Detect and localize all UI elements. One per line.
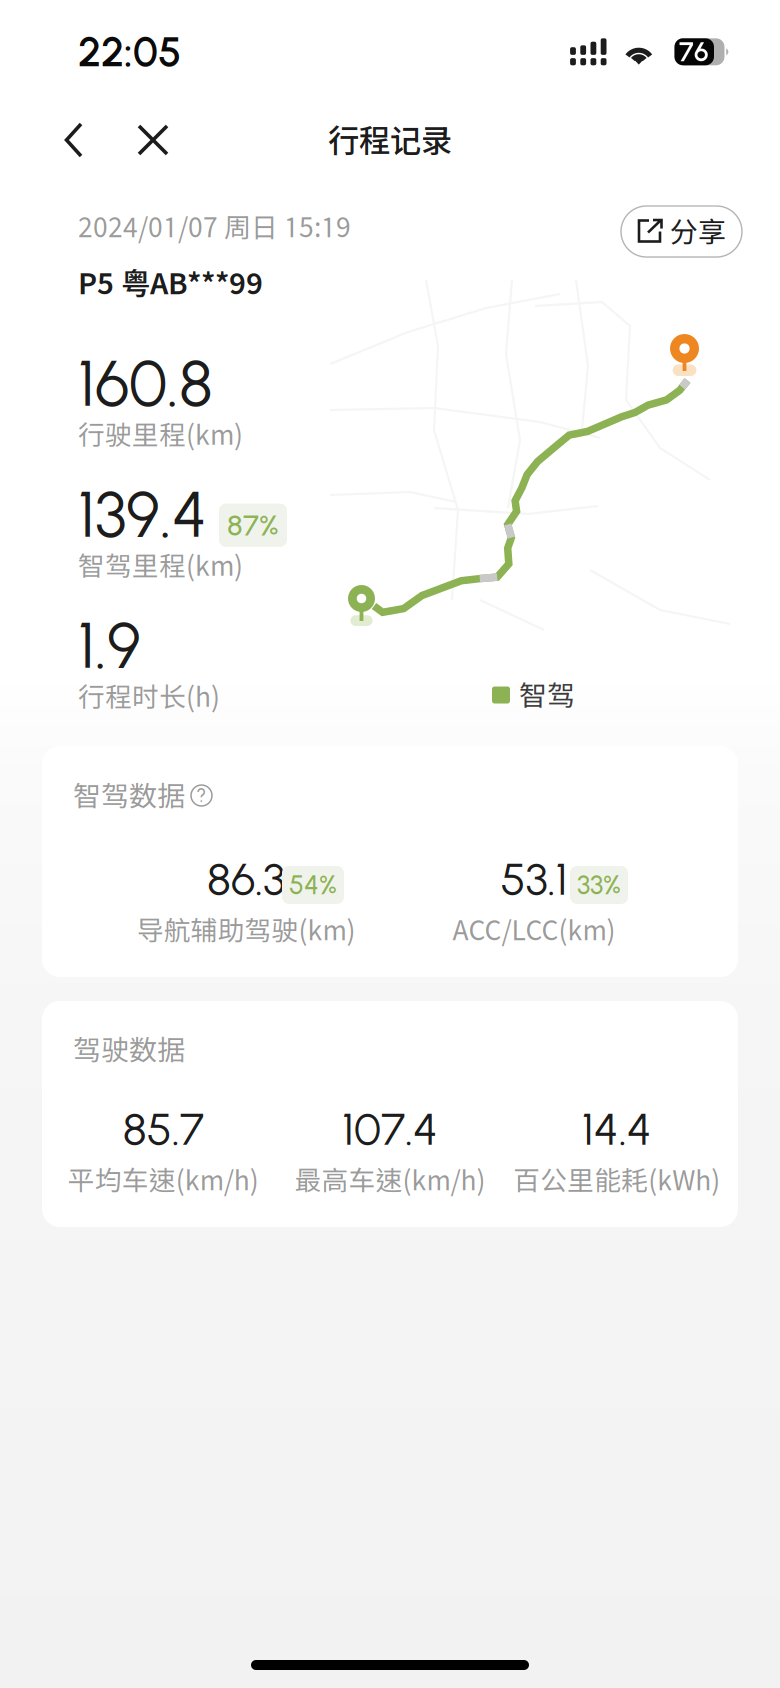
- staticText: 最高车速(km/h): [294, 1164, 485, 1196]
- staticText: 86.3: [207, 852, 285, 906]
- button[interactable]: 分享: [621, 206, 742, 257]
- staticText: P5 粤AB***99: [78, 266, 263, 300]
- staticText: 53.1: [500, 852, 567, 906]
- staticText: 智驾数据: [73, 779, 185, 812]
- staticText: 智驾: [519, 678, 575, 711]
- staticText: 2024/01/07 周日 15:19: [78, 211, 351, 243]
- staticText: 54%: [289, 869, 337, 901]
- staticText: 33%: [577, 869, 621, 901]
- staticText: 行程时长(h): [78, 681, 220, 712]
- staticText: 107.4: [342, 1102, 438, 1156]
- staticText: 导航辅助驾驶(km): [136, 914, 355, 946]
- staticText: 百公里能耗(kWh): [513, 1164, 720, 1196]
- staticText: ?: [196, 784, 206, 807]
- staticText: 平均车速(km/h): [68, 1164, 259, 1196]
- staticText: 22:05: [78, 27, 181, 77]
- staticText: 分享: [670, 215, 726, 248]
- staticText: 驾驶数据: [73, 1033, 185, 1066]
- staticText: 85.7: [123, 1102, 204, 1156]
- staticText: 行驶里程(km): [78, 419, 243, 450]
- staticText: 1.9: [78, 607, 141, 684]
- staticText: 87%: [227, 508, 279, 543]
- staticText: 14.4: [582, 1102, 652, 1156]
- staticText: 行程记录: [328, 121, 452, 158]
- button[interactable]: Back: [44, 107, 104, 173]
- button[interactable]: Close: [120, 107, 186, 173]
- staticText: 智驾里程(km): [78, 550, 243, 581]
- staticText: 139.4: [78, 476, 207, 553]
- staticText: 160.8: [78, 345, 213, 422]
- staticText: ACC/LCC(km): [452, 914, 615, 946]
- staticText: 76: [679, 36, 709, 68]
